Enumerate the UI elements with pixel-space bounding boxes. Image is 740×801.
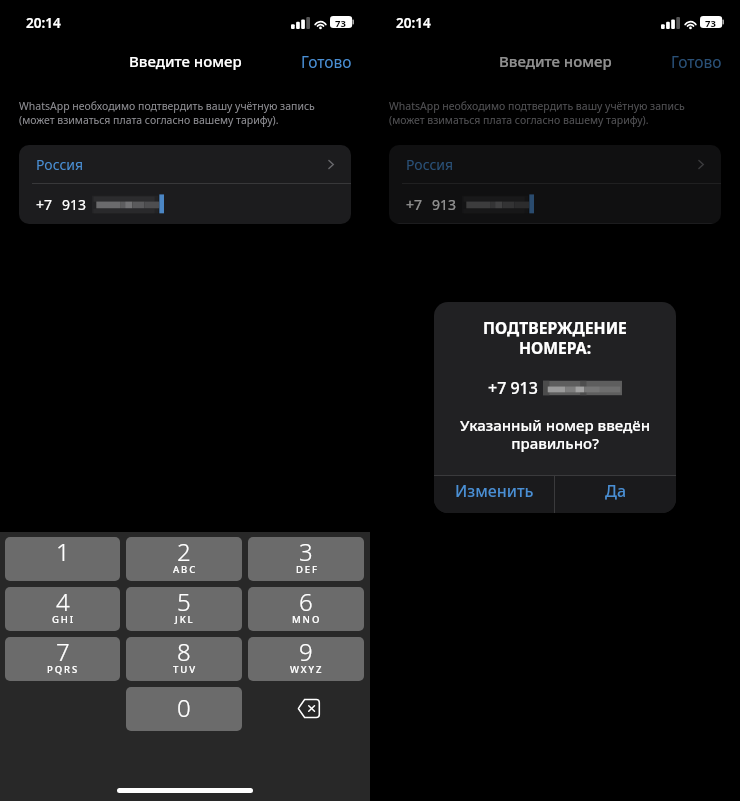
button[interactable]: 7 xyxy=(5,637,120,681)
staticText: 2 xyxy=(177,537,191,568)
staticText: DEF xyxy=(296,563,319,576)
button[interactable]: Готово xyxy=(653,47,740,75)
staticText: TUV xyxy=(173,663,197,676)
staticText: PQRS xyxy=(47,663,80,676)
button[interactable]: 5 xyxy=(126,587,242,631)
staticText: Указанный номер введён правильно? xyxy=(434,415,676,453)
staticText: WXYZ xyxy=(290,663,324,676)
button[interactable]: 1 xyxy=(5,537,120,581)
staticText: 913 xyxy=(432,195,457,214)
staticText: 20:14 xyxy=(396,14,431,32)
staticText: 1 xyxy=(56,537,70,568)
staticText: 20:14 xyxy=(26,14,61,32)
button[interactable]: Россия xyxy=(19,145,351,183)
button[interactable]: 9 xyxy=(248,637,364,681)
staticText: Готово xyxy=(671,51,722,71)
staticText: ABC xyxy=(173,563,198,576)
button[interactable]: +7 xyxy=(389,184,721,224)
button[interactable]: Изменить xyxy=(434,476,554,513)
button[interactable]: 8 xyxy=(126,637,242,681)
staticText: Россия xyxy=(406,155,454,174)
staticText: +7 913 xyxy=(488,377,538,399)
staticText: +7 xyxy=(406,195,423,214)
staticText: Введите номер xyxy=(499,51,612,71)
button[interactable]: Delete xyxy=(248,687,364,731)
button[interactable]: 4 xyxy=(5,587,120,631)
button[interactable]: +7 xyxy=(19,184,351,224)
staticText: Россия xyxy=(36,155,84,174)
staticText: 73 xyxy=(705,17,716,29)
staticText: JKL xyxy=(175,613,195,626)
staticText: Введите номер xyxy=(129,51,242,71)
staticText: 73 xyxy=(335,17,346,29)
staticText: GHI xyxy=(52,613,76,626)
staticText: WhatsApp необходимо подтвердить вашу учё… xyxy=(19,99,315,127)
staticText: 0 xyxy=(177,691,191,724)
button[interactable]: Готово xyxy=(283,47,370,75)
staticText: 7 xyxy=(56,637,70,668)
button[interactable]: Россия xyxy=(389,145,721,183)
staticText: ПОДТВЕРЖДЕНИЕ НОМЕРА: xyxy=(434,317,676,358)
staticText: WhatsApp необходимо подтвердить вашу учё… xyxy=(389,99,685,127)
staticText: MNO xyxy=(292,613,322,626)
staticText: 4 xyxy=(56,587,70,618)
button[interactable]: 2 xyxy=(126,537,242,581)
button[interactable]: 0 xyxy=(126,687,242,731)
staticText: 5 xyxy=(177,587,191,618)
staticText: 9 xyxy=(299,637,313,668)
staticText: Да xyxy=(605,480,626,502)
button[interactable]: 3 xyxy=(248,537,364,581)
staticText: Готово xyxy=(301,51,352,71)
staticText: 6 xyxy=(299,587,313,618)
staticText: 3 xyxy=(299,537,313,568)
button[interactable]: 6 xyxy=(248,587,364,631)
staticText: 8 xyxy=(177,637,191,668)
staticText: +7 xyxy=(36,195,53,214)
button[interactable]: Да xyxy=(555,476,676,513)
staticText: 913 xyxy=(62,195,87,214)
staticText: Изменить xyxy=(455,480,534,502)
